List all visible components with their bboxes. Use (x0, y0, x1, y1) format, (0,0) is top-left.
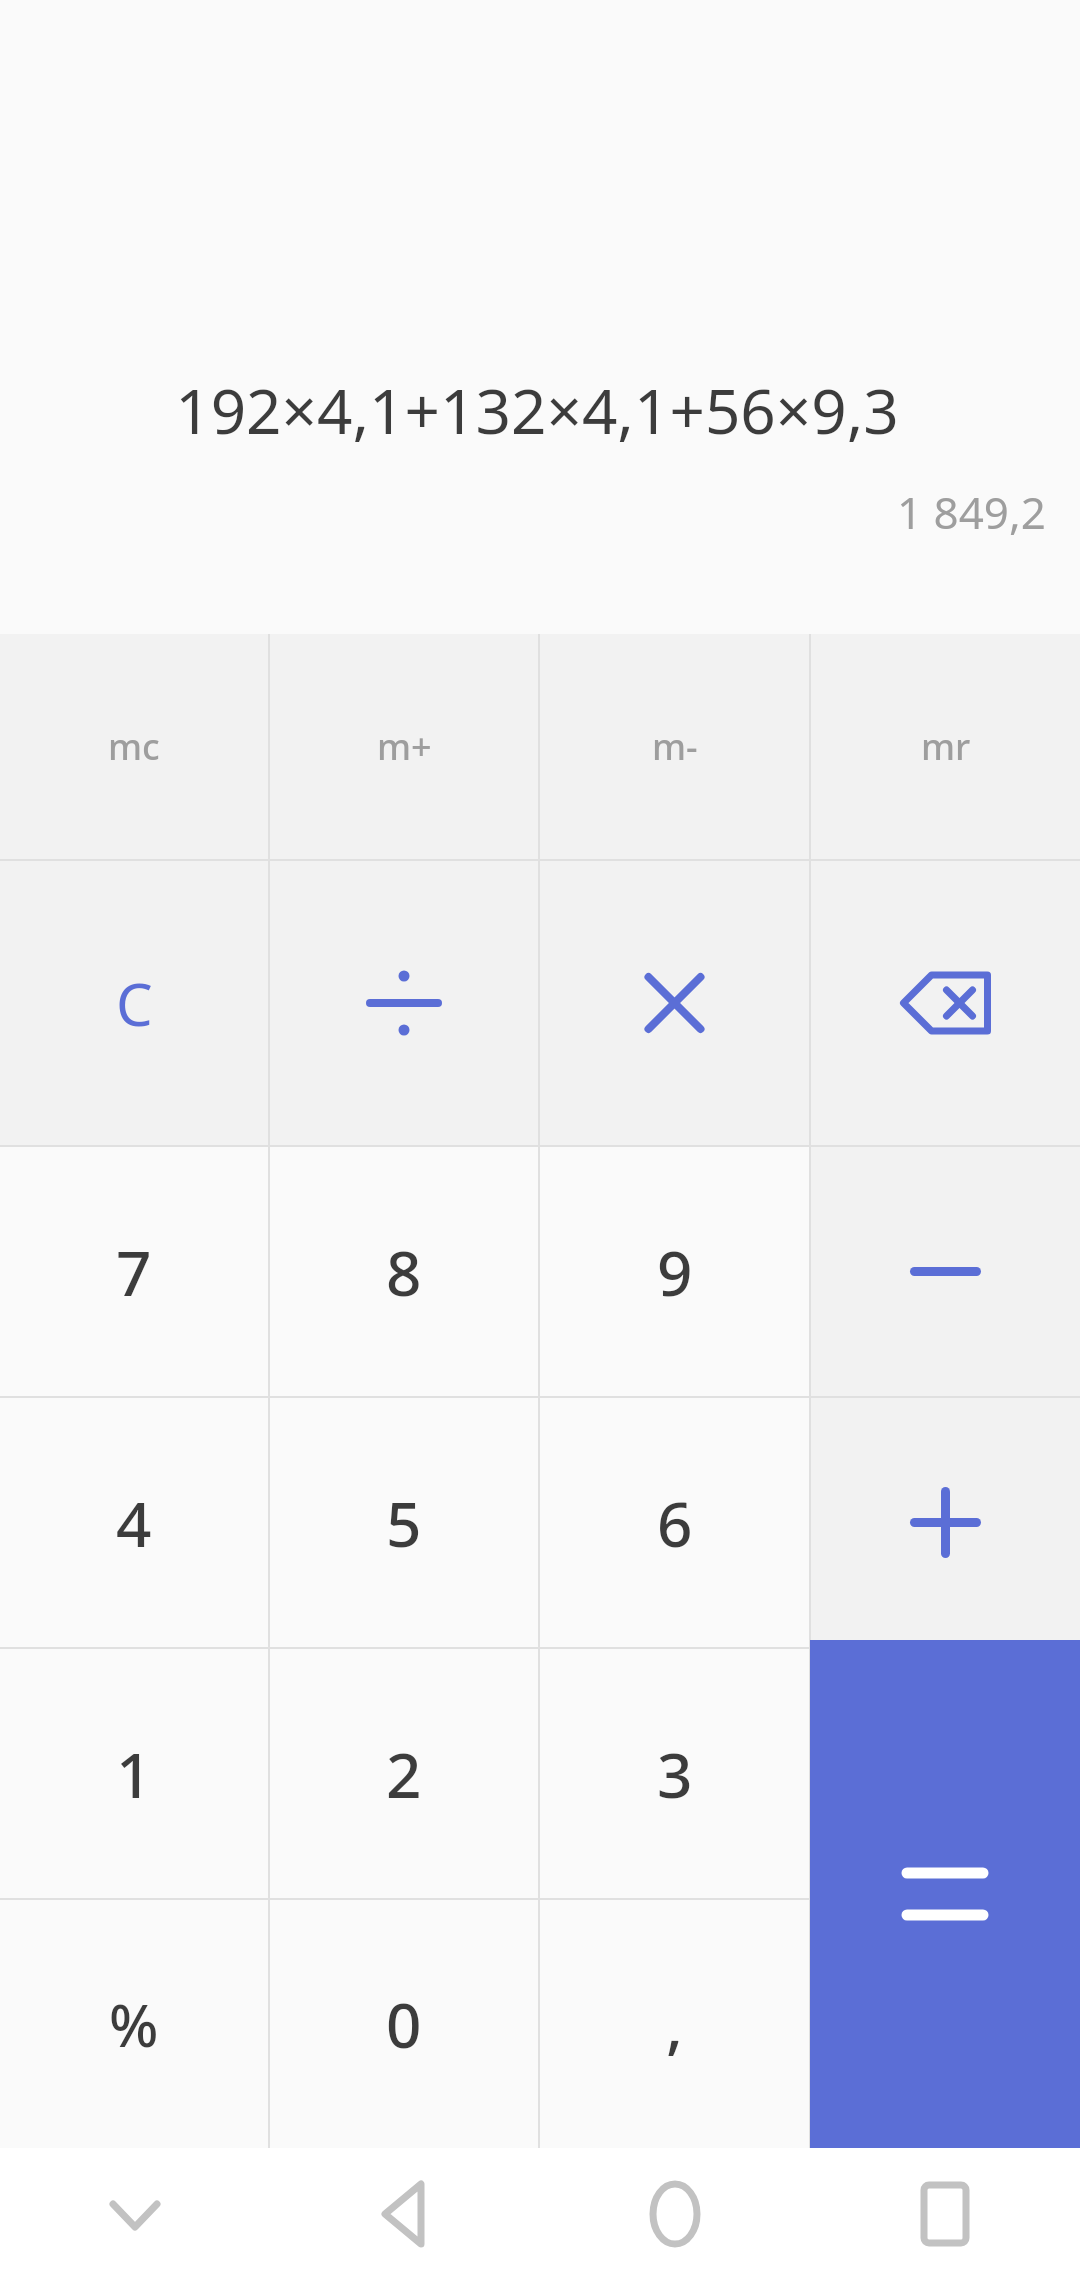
button[interactable]: % (0, 1900, 268, 2148)
staticText: 0 (386, 1982, 422, 2066)
button[interactable]: Home (540, 2148, 810, 2280)
staticText: 6 (657, 1481, 693, 1565)
button[interactable]: mr (811, 634, 1080, 859)
staticText: 1 (116, 1732, 152, 1816)
staticText: 7 (116, 1230, 152, 1314)
staticText: , (666, 1982, 683, 2066)
button[interactable]: 3 (540, 1649, 809, 1898)
staticText: 9 (657, 1230, 693, 1314)
button[interactable]: 4 (0, 1398, 268, 1647)
button[interactable]: Plus (811, 1398, 1080, 1647)
button[interactable]: 7 (0, 1147, 268, 1396)
staticText: 1 849,2 (28, 482, 1046, 542)
staticText: 2 (386, 1732, 422, 1816)
button[interactable]: Back (270, 2148, 540, 2280)
staticText: 192×4,1+132×4,1+56×9,3 (28, 368, 1046, 452)
button[interactable]: 0 (270, 1900, 538, 2148)
button[interactable]: 1 (0, 1649, 268, 1898)
button[interactable]: 8 (270, 1147, 538, 1396)
staticText: 4 (116, 1481, 152, 1565)
button[interactable]: Backspace (811, 861, 1080, 1145)
button[interactable]: , (540, 1900, 809, 2148)
staticText: 5 (386, 1481, 422, 1565)
button[interactable]: Minus (811, 1147, 1080, 1396)
button[interactable]: m- (540, 634, 809, 859)
staticText: m- (652, 722, 698, 771)
staticText: % (109, 1985, 159, 2064)
button[interactable]: 9 (540, 1147, 809, 1396)
staticText: mr (921, 722, 971, 771)
button[interactable]: 2 (270, 1649, 538, 1898)
button[interactable]: Recents (810, 2148, 1080, 2280)
button[interactable]: Divide (270, 861, 538, 1145)
button[interactable]: 5 (270, 1398, 538, 1647)
button[interactable]: mc (0, 634, 268, 859)
button[interactable]: m+ (270, 634, 538, 859)
button[interactable]: C (0, 861, 268, 1145)
staticText: m+ (377, 722, 432, 771)
staticText: 8 (386, 1230, 422, 1314)
staticText: 3 (657, 1732, 693, 1816)
staticText: mc (108, 722, 160, 771)
button[interactable]: 6 (540, 1398, 809, 1647)
button[interactable]: Multiply (540, 861, 809, 1145)
button[interactable]: Hide keyboard (0, 2148, 270, 2280)
button[interactable]: Equals (810, 1640, 1080, 2148)
staticText: C (116, 964, 153, 1043)
